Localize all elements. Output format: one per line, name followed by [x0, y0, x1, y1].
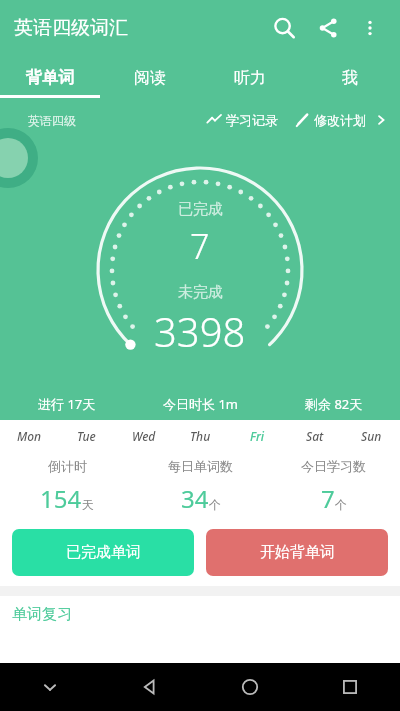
- button[interactable]: 已完成单词: [12, 529, 194, 576]
- staticText: 154: [40, 482, 82, 515]
- staticText: 听力: [234, 68, 266, 88]
- staticText: 已完成: [178, 200, 223, 219]
- staticText: 今日时长 1m: [163, 395, 238, 413]
- button[interactable]: 开始背单词: [206, 529, 388, 576]
- button[interactable]: 阅读: [100, 58, 200, 98]
- button[interactable]: 今日学习数: [267, 458, 400, 515]
- staticText: Sun: [361, 428, 382, 444]
- staticText: 天: [82, 497, 94, 512]
- staticText: 开始背单词: [260, 543, 335, 562]
- staticText: 每日单词数: [168, 458, 233, 474]
- staticText: Fri: [250, 428, 265, 444]
- button[interactable]: 学习记录: [206, 112, 278, 128]
- staticText: Mon: [17, 428, 42, 444]
- button[interactable]: Mon: [0, 420, 58, 452]
- staticText: 剩余 82天: [305, 395, 363, 413]
- staticText: 今日学习数: [301, 458, 366, 474]
- staticText: Sat: [306, 428, 324, 444]
- button[interactable]: Back: [100, 663, 200, 711]
- button[interactable]: 单词复习: [0, 596, 400, 632]
- staticText: 学习记录: [226, 112, 278, 128]
- staticText: 单词复习: [12, 605, 72, 624]
- staticText: Wed: [132, 428, 156, 444]
- button[interactable]: Sun: [343, 420, 400, 452]
- staticText: Tue: [77, 428, 96, 444]
- staticText: Thu: [190, 428, 211, 444]
- button[interactable]: Hide keyboard: [0, 663, 100, 711]
- button[interactable]: Sat: [286, 420, 343, 452]
- button[interactable]: 倒计时: [0, 458, 134, 515]
- button[interactable]: Search: [262, 6, 306, 50]
- staticText: 3398: [154, 304, 246, 358]
- staticText: 34: [181, 482, 209, 515]
- staticText: 英语四级词汇: [14, 16, 128, 40]
- button[interactable]: Home: [200, 663, 300, 711]
- staticText: 英语四级: [28, 113, 76, 128]
- staticText: 我: [342, 68, 358, 88]
- button[interactable]: 每日单词数: [134, 458, 267, 515]
- staticText: 已完成单词: [66, 543, 141, 562]
- button[interactable]: Tue: [58, 420, 115, 452]
- button[interactable]: Fri: [229, 420, 286, 452]
- staticText: 未完成: [178, 283, 223, 302]
- staticText: 个: [209, 497, 221, 512]
- button[interactable]: Share: [306, 6, 350, 50]
- staticText: 7: [321, 482, 335, 515]
- staticText: 阅读: [134, 68, 166, 88]
- button[interactable]: Thu: [172, 420, 229, 452]
- button[interactable]: 听力: [200, 58, 300, 98]
- staticText: 背单词: [26, 68, 74, 88]
- button[interactable]: Wed: [115, 420, 172, 452]
- button[interactable]: 修改计划: [294, 112, 366, 128]
- staticText: 7: [190, 223, 210, 269]
- staticText: 个: [335, 497, 347, 512]
- button[interactable]: 背单词: [0, 58, 100, 98]
- button[interactable]: More options: [350, 8, 390, 48]
- staticText: 倒计时: [48, 458, 87, 474]
- staticText: 修改计划: [314, 112, 366, 128]
- button[interactable]: Recent apps: [300, 663, 400, 711]
- button[interactable]: 我: [300, 58, 400, 98]
- staticText: 进行 17天: [38, 395, 96, 413]
